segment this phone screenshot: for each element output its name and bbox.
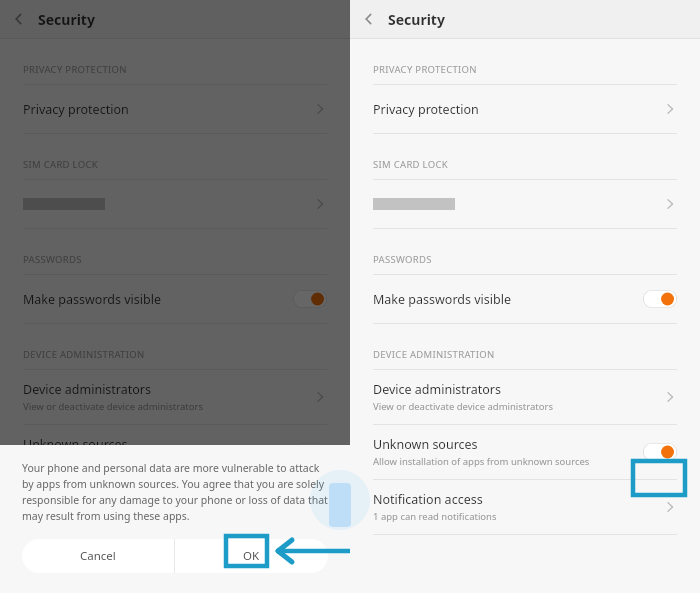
- staticText: Make passwords visible: [373, 291, 511, 308]
- button[interactable]: Make passwords visible: [0, 275, 350, 323]
- staticText: PRIVACY PROTECTION: [23, 63, 127, 76]
- staticText: Allow installation of apps from unknown …: [23, 455, 240, 468]
- staticText: Cancel: [80, 548, 116, 564]
- staticText: 1 app can read notifications: [23, 510, 147, 523]
- button[interactable]: Privacy protection: [350, 85, 700, 133]
- button[interactable]: Privacy protection: [0, 85, 350, 133]
- button[interactable]: Toggle: [293, 290, 327, 308]
- staticText: Notification access: [373, 491, 483, 508]
- staticText: Notification access: [23, 491, 133, 508]
- button[interactable]: Device administrators: [0, 370, 350, 424]
- staticText: DEVICE ADMINISTRATION: [23, 348, 145, 361]
- button[interactable]: [350, 180, 700, 228]
- staticText: Security: [388, 10, 445, 29]
- staticText: Unknown sources: [373, 436, 478, 453]
- button[interactable]: Toggle: [643, 443, 677, 461]
- staticText: Unknown sources: [23, 436, 128, 453]
- staticText: SIM CARD LOCK: [373, 158, 448, 171]
- button[interactable]: Unknown sources: [0, 425, 350, 479]
- staticText: Allow installation of apps from unknown …: [373, 455, 590, 468]
- staticText: 1 app can read notifications: [373, 510, 497, 523]
- staticText: View or deactivate device administrators: [373, 400, 553, 413]
- staticText: Make passwords visible: [23, 291, 161, 308]
- staticText: SIM CARD LOCK: [23, 158, 98, 171]
- staticText: Your phone and personal data are more vu…: [22, 461, 328, 523]
- staticText: View or deactivate device administrators: [23, 400, 203, 413]
- button[interactable]: Notification access: [350, 480, 700, 534]
- button[interactable]: Cancel: [22, 539, 174, 573]
- staticText: Privacy protection: [373, 101, 479, 118]
- button[interactable]: OK: [175, 539, 328, 573]
- staticText: PRIVACY PROTECTION: [373, 63, 477, 76]
- button[interactable]: Toggle: [643, 290, 677, 308]
- staticText: OK: [243, 548, 260, 564]
- button[interactable]: Device administrators: [350, 370, 700, 424]
- staticText: DEVICE ADMINISTRATION: [373, 348, 495, 361]
- button[interactable]: Toggle: [293, 443, 327, 461]
- button[interactable]: Back: [350, 0, 388, 38]
- button[interactable]: Notification access: [0, 480, 350, 534]
- staticText: Device administrators: [23, 381, 152, 398]
- staticText: PASSWORDS: [373, 253, 432, 266]
- staticText: Device administrators: [373, 381, 502, 398]
- staticText: Security: [38, 10, 95, 29]
- button[interactable]: Back: [0, 0, 38, 38]
- button[interactable]: Make passwords visible: [350, 275, 700, 323]
- staticText: Privacy protection: [23, 101, 129, 118]
- staticText: PASSWORDS: [23, 253, 82, 266]
- button[interactable]: Unknown sources: [350, 425, 700, 479]
- button[interactable]: [0, 180, 350, 228]
